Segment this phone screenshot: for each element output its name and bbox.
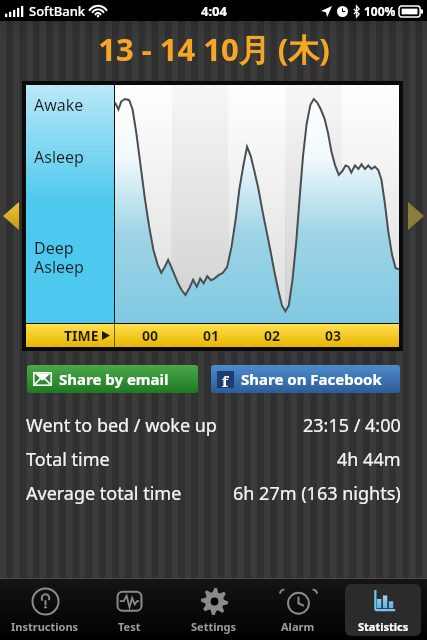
staticText: 100% xyxy=(364,3,396,19)
button[interactable]: Previous night xyxy=(0,186,22,246)
staticText: Test xyxy=(118,619,141,634)
button[interactable]: Share by email xyxy=(27,365,198,393)
button[interactable]: Settings xyxy=(176,584,252,636)
button[interactable]: Instructions xyxy=(7,584,83,636)
staticText: SoftBank xyxy=(29,2,86,20)
staticText: Average total time xyxy=(26,481,182,506)
staticText: Deep Asleep xyxy=(34,237,84,278)
staticText: Total time xyxy=(26,447,110,472)
staticText: Settings xyxy=(191,619,237,634)
staticText: 4:04 xyxy=(201,2,227,20)
button[interactable]: Next night xyxy=(405,186,427,246)
staticText: Awake xyxy=(34,94,84,116)
button[interactable]: Statistics xyxy=(345,584,421,636)
staticText: 00 xyxy=(142,326,159,345)
staticText: TIME xyxy=(64,326,99,345)
staticText: Went to bed / woke up xyxy=(26,413,217,438)
staticText: Share by email xyxy=(59,369,169,389)
staticText: 02 xyxy=(264,326,281,345)
staticText: f xyxy=(222,371,229,388)
staticText: 4h 44m xyxy=(337,447,401,472)
staticText: 6h 27m (163 nights) xyxy=(233,481,401,506)
staticText: Share on Facebook xyxy=(241,369,382,389)
button[interactable]: f xyxy=(211,365,400,393)
staticText: 13 - 14 10月 (木) xyxy=(98,28,330,70)
button[interactable]: Test xyxy=(91,584,167,636)
staticText: Alarm xyxy=(281,619,315,634)
staticText: Asleep xyxy=(34,146,84,168)
staticText: 23:15 / 4:00 xyxy=(303,413,401,438)
staticText: Instructions xyxy=(11,619,79,634)
button[interactable]: Alarm xyxy=(260,584,336,636)
button[interactable]: Awake xyxy=(26,85,399,347)
staticText: 01 xyxy=(203,326,220,345)
staticText: 03 xyxy=(325,326,342,345)
staticText: Statistics xyxy=(358,619,409,634)
